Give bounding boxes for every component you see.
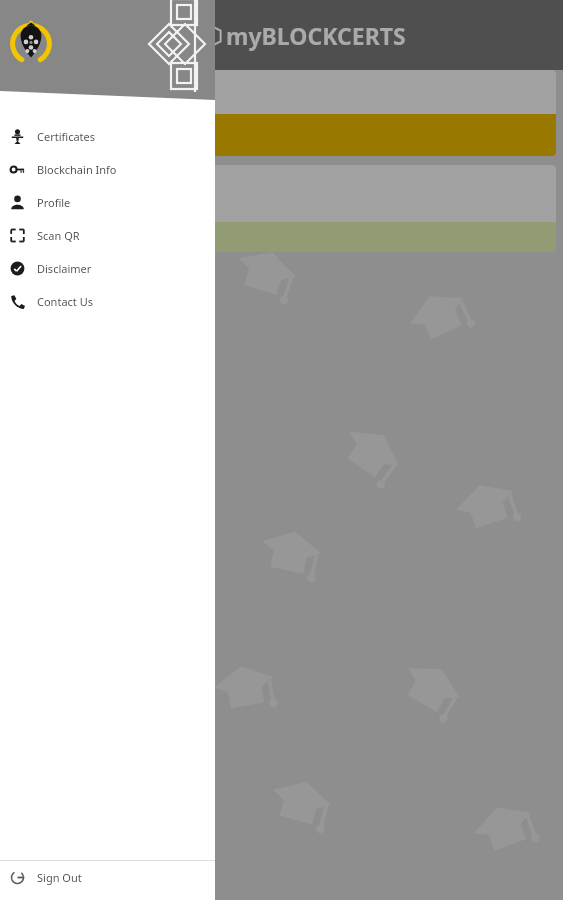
- button[interactable]: Sign Out: [0, 861, 215, 894]
- button[interactable]: [8, 70, 556, 114]
- button[interactable]: Contact Us: [0, 285, 215, 318]
- staticText: Disclaimer: [37, 261, 92, 276]
- button[interactable]: Certificates: [0, 120, 215, 153]
- button[interactable]: Blockchain Info: [0, 153, 215, 186]
- button[interactable]: [8, 222, 556, 252]
- button[interactable]: Scan QR: [0, 219, 215, 252]
- staticText: Certificates: [37, 129, 96, 144]
- staticText: myBLOCKCERTS: [226, 20, 406, 51]
- staticText: Contact Us: [37, 294, 93, 309]
- button[interactable]: Profile: [0, 186, 215, 219]
- staticText: Blockchain Info: [37, 162, 117, 177]
- staticText: Profile: [37, 195, 71, 210]
- staticText: Sign Out: [37, 870, 82, 885]
- button[interactable]: Disclaimer: [0, 252, 215, 285]
- staticText: Scan QR: [37, 228, 80, 243]
- button[interactable]: [8, 165, 556, 222]
- button[interactable]: [8, 114, 556, 156]
